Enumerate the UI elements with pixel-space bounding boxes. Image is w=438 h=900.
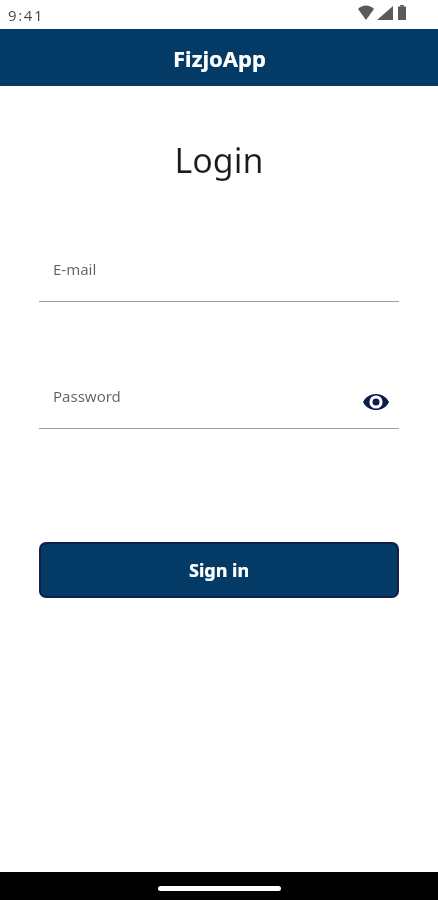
staticText: Login: [0, 137, 438, 183]
button[interactable]: Password: [39, 386, 354, 428]
staticText: E-mail: [53, 259, 97, 279]
staticText: Password: [53, 386, 121, 406]
staticText: Sign in: [189, 558, 250, 583]
button[interactable]: Show password: [356, 382, 396, 422]
staticText: FizjoApp: [173, 43, 266, 73]
staticText: 9:41: [8, 5, 45, 25]
button[interactable]: Sign in: [41, 544, 397, 596]
button[interactable]: E-mail: [39, 259, 399, 301]
